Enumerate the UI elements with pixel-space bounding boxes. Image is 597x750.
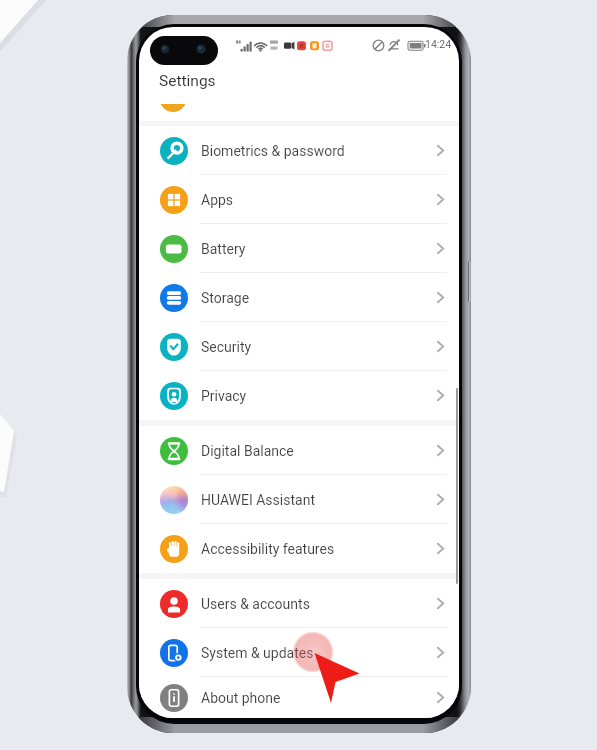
button[interactable]: About phone — [139, 677, 459, 718]
button[interactable]: Digital Balance — [139, 426, 459, 475]
button[interactable]: Storage — [139, 273, 459, 322]
staticText: HUAWEI Assistant — [201, 492, 315, 508]
button[interactable]: Biometrics & password — [139, 126, 459, 175]
staticText: 14:24 — [425, 38, 452, 50]
staticText: Security — [201, 339, 252, 355]
staticText: Apps — [201, 192, 234, 208]
staticText: Biometrics & password — [201, 143, 345, 159]
button[interactable]: Apps — [139, 175, 459, 224]
button[interactable]: Accessibility features — [139, 524, 459, 573]
button[interactable]: HUAWEI Assistant — [139, 475, 459, 524]
staticText: Battery — [201, 241, 246, 257]
button[interactable]: Battery — [139, 224, 459, 273]
staticText: Privacy — [201, 388, 247, 404]
button[interactable]: System & updates — [139, 628, 459, 677]
staticText: Digital Balance — [201, 443, 294, 459]
staticText: About phone — [201, 690, 281, 706]
staticText: Accessibility features — [201, 541, 335, 557]
button[interactable]: Security — [139, 322, 459, 371]
staticText: Users & accounts — [201, 596, 310, 612]
button[interactable]: Privacy — [139, 371, 459, 420]
staticText: Settings — [159, 72, 216, 90]
button[interactable]: Users & accounts — [139, 579, 459, 628]
staticText: Storage — [201, 290, 250, 306]
staticText: System & updates — [201, 645, 314, 661]
